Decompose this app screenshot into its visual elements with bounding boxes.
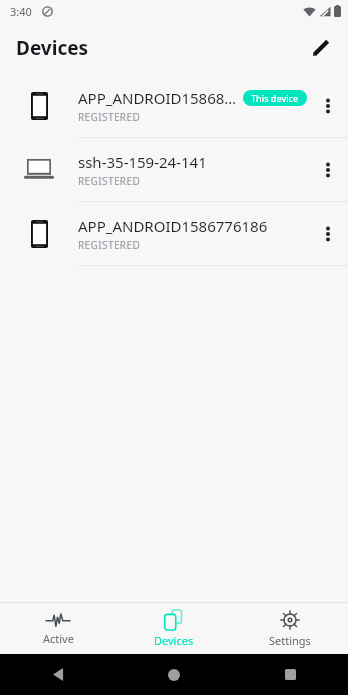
staticText: APP_ANDROID1586776186 — [78, 216, 268, 236]
button[interactable]: This device — [243, 90, 307, 106]
button[interactable]: Active — [0, 603, 116, 654]
button[interactable]: APP_ANDROID15868… — [0, 74, 348, 137]
staticText: REGISTERED — [78, 110, 141, 124]
staticText: This device — [251, 92, 299, 104]
staticText: REGISTERED — [78, 238, 141, 252]
button[interactable]: More options — [308, 202, 348, 265]
button[interactable]: Settings — [232, 603, 348, 654]
button[interactable]: ssh-35-159-24-141 — [0, 138, 348, 201]
button[interactable]: More options — [308, 74, 348, 137]
staticText: Devices — [16, 35, 89, 61]
staticText: REGISTERED — [78, 174, 141, 188]
button[interactable]: Back — [0, 654, 116, 695]
staticText: Devices — [154, 633, 194, 648]
staticText: Active — [43, 631, 74, 646]
button[interactable]: Edit — [298, 26, 342, 70]
button[interactable]: Home — [116, 654, 232, 695]
staticText: 3:40 — [10, 4, 32, 19]
staticText: Settings — [269, 633, 311, 648]
staticText: APP_ANDROID15868… — [78, 88, 237, 108]
button[interactable]: Devices — [116, 603, 232, 654]
button[interactable]: More options — [308, 138, 348, 201]
button[interactable]: APP_ANDROID1586776186 — [0, 202, 348, 265]
staticText: ssh-35-159-24-141 — [78, 152, 207, 172]
button[interactable]: Recent apps — [232, 654, 348, 695]
